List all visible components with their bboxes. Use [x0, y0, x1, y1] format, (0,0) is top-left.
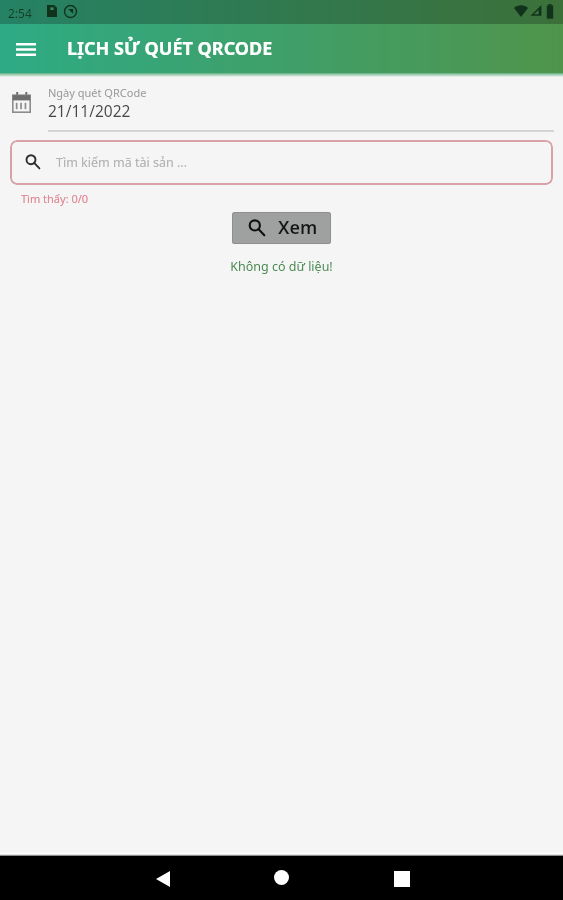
staticText: Không có dữ liệu!	[0, 258, 563, 275]
button[interactable]: Open navigation menu	[8, 31, 44, 67]
staticText: Tìm kiếm mã tài sản ...	[56, 154, 187, 171]
staticText: 2:54	[8, 5, 32, 21]
staticText: Tìm thấy: 0/0	[21, 191, 89, 206]
staticText: Ngày quét QRCode	[48, 85, 147, 100]
staticText: 21/11/2022	[48, 100, 131, 121]
button[interactable]: Ngày quét QRCode	[0, 79, 563, 124]
button[interactable]: Xem	[232, 212, 331, 244]
button[interactable]: Home	[269, 865, 293, 889]
staticText: LỊCH SỬ QUÉT QRCODE	[67, 36, 273, 61]
button[interactable]: Tìm kiếm mã tài sản ...	[10, 140, 553, 185]
button[interactable]: Recent apps	[390, 867, 414, 891]
button[interactable]: Back	[151, 867, 175, 891]
staticText: Xem	[278, 215, 318, 240]
